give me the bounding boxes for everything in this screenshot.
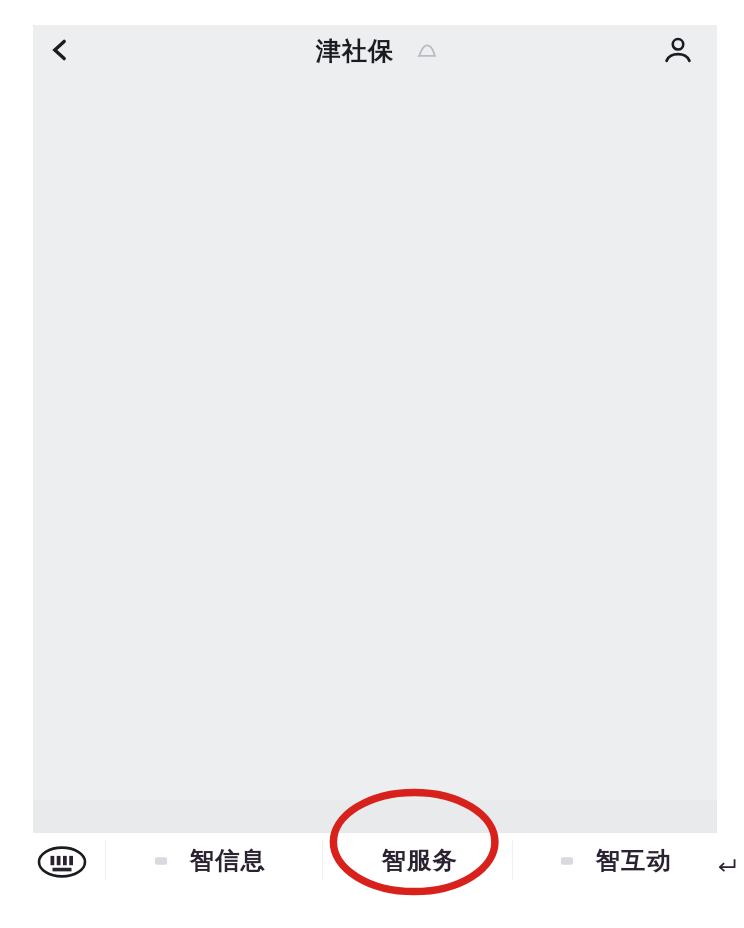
staticText: 津社保 (315, 36, 394, 67)
button[interactable]: Profile (652, 24, 704, 76)
button[interactable]: Keyboard (32, 838, 92, 886)
button[interactable]: Notifications (412, 36, 442, 66)
button[interactable]: Back (36, 24, 84, 76)
button[interactable]: 智互动 (518, 836, 724, 886)
button[interactable]: 智信息 (110, 836, 320, 886)
button[interactable]: 智服务 (330, 836, 508, 886)
staticText: 智互动 (595, 846, 672, 876)
staticText: 智信息 (189, 846, 266, 876)
staticText: 智服务 (381, 846, 458, 876)
